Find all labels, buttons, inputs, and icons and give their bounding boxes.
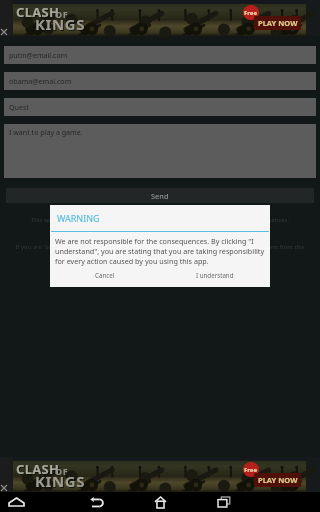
staticText: putin@email.com — [9, 50, 68, 60]
staticText: Free — [244, 9, 258, 17]
button[interactable]: CLASH — [13, 457, 306, 492]
staticText: We are not responsible for the consequen… — [55, 236, 265, 266]
staticText: Send — [151, 191, 169, 201]
button[interactable]: Cancel — [50, 266, 160, 284]
staticText: CLASH — [16, 460, 60, 478]
button[interactable]: Hide keyboard — [2, 492, 31, 512]
staticText: I want to play a game. — [9, 127, 83, 137]
button[interactable]: CLASH — [13, 0, 306, 36]
staticText: If you are "serious" about the use of th… — [0, 243, 320, 251]
staticText: PLAY NOW — [258, 18, 298, 28]
staticText: OF — [55, 8, 69, 20]
staticText: PLAY NOW — [258, 475, 298, 485]
staticText: obama@emai.com — [9, 76, 72, 86]
staticText: KINGS — [35, 14, 86, 34]
staticText: KINGS — [35, 471, 86, 491]
button[interactable]: putin@email.com — [4, 46, 316, 64]
staticText: KINGS — [36, 15, 87, 35]
button[interactable]: Recent apps — [210, 492, 238, 512]
button[interactable]: I understand — [160, 266, 270, 284]
staticText: Quest — [9, 102, 29, 112]
button[interactable]: Close ad — [0, 0, 13, 36]
button[interactable]: Close ad — [0, 457, 13, 492]
staticText: This app is a prank. The developer of th… — [0, 216, 320, 224]
staticText: CLASH — [17, 461, 61, 479]
staticText: WARNING — [57, 212, 100, 224]
staticText: Free — [244, 466, 258, 474]
staticText: Cancel — [95, 271, 115, 279]
staticText: I understand — [196, 271, 234, 279]
button[interactable]: Home — [146, 492, 174, 512]
button[interactable]: Send — [6, 188, 314, 203]
button[interactable]: obama@emai.com — [4, 72, 316, 90]
staticText: CLASH — [17, 4, 61, 22]
staticText: KINGS — [36, 472, 87, 492]
staticText: OF — [55, 465, 69, 477]
staticText: CLASH — [16, 3, 60, 21]
button[interactable]: Back — [82, 492, 110, 512]
